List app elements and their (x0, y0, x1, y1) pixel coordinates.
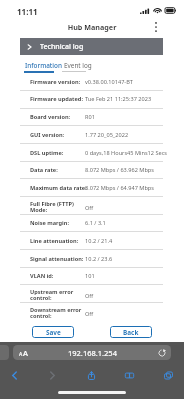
button[interactable]: Information (25, 61, 62, 70)
button[interactable]: Back (110, 326, 152, 338)
button[interactable]: Event log (64, 61, 92, 70)
staticText: A (19, 351, 23, 358)
staticText: GUI version: (30, 131, 65, 139)
staticText: 6.1 / 3.1 (85, 219, 106, 227)
staticText: Hub Manager (0, 22, 184, 32)
button[interactable]: Technical log (20, 38, 163, 55)
staticText: Firmware version: (30, 78, 81, 86)
button[interactable]: Forward (41, 364, 63, 386)
staticText: Off (85, 310, 94, 318)
button[interactable]: Share (80, 364, 102, 386)
staticText: A (23, 348, 28, 358)
staticText: 192.168.1.254 (68, 348, 117, 358)
staticText: Downstream error control: (30, 306, 82, 320)
staticText: 10.2 / 21.4 (85, 237, 113, 245)
staticText: Back (123, 328, 139, 337)
staticText: Full Fibre (FTTP) Mode: (30, 200, 74, 214)
staticText: Board version: (30, 113, 71, 121)
staticText: Technical log (40, 42, 84, 52)
button[interactable]: More options (148, 18, 164, 36)
staticText: Signal attenuation: (30, 255, 84, 263)
staticText: Tue Feb 21 11:25:37 2023 (85, 95, 152, 103)
button[interactable]: Back (3, 364, 25, 386)
staticText: Off (85, 292, 94, 300)
staticText: 0 days,18 Hours45 Mins12 Secs (85, 149, 168, 157)
staticText: DSL uptime: (30, 149, 64, 157)
staticText: Data rate: (30, 166, 58, 174)
staticText: 8.072 Mbps / 63.962 Mbps (85, 166, 154, 174)
staticText: 11:11 (17, 6, 38, 17)
staticText: R01 (85, 113, 95, 121)
staticText: 10.2 / 23.6 (85, 255, 113, 263)
staticText: Maximum data rate: (30, 184, 87, 192)
staticText: Save (46, 328, 61, 337)
staticText: VLAN id: (30, 272, 54, 280)
staticText: Firmware updated: (30, 95, 83, 103)
button[interactable]: Bookmarks (118, 364, 140, 386)
staticText: Upstream error control: (30, 288, 74, 302)
staticText: Noise margin: (30, 219, 69, 227)
staticText: 8.072 Mbps / 64.947 Mbps (85, 184, 154, 192)
button[interactable]: 192.168.1.254 (13, 345, 171, 360)
staticText: v0.38.00.10147-BT (85, 78, 133, 86)
button[interactable]: Save (32, 326, 74, 338)
staticText: 1.77 20_05_2022 (85, 131, 129, 139)
button[interactable]: Tabs (157, 364, 179, 386)
staticText: Off (85, 204, 94, 212)
staticText: Line attenuation: (30, 237, 79, 245)
staticText: 101 (85, 272, 95, 280)
